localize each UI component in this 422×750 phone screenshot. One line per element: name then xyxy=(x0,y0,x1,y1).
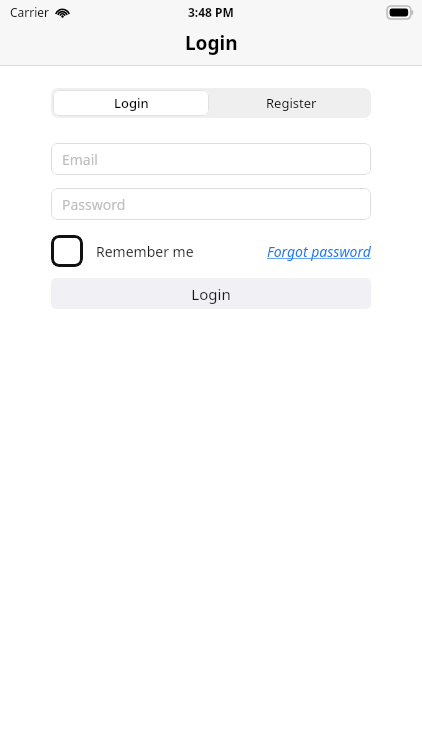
staticText: Register xyxy=(266,94,317,112)
staticText: Carrier xyxy=(10,4,50,20)
staticText: Forgot password xyxy=(267,242,371,261)
button[interactable]: Password xyxy=(51,188,371,220)
button[interactable]: Register xyxy=(211,88,371,118)
staticText: Email xyxy=(62,150,98,169)
button[interactable]: Email xyxy=(51,143,371,175)
button[interactable]: Login xyxy=(51,278,371,309)
staticText: Password xyxy=(62,195,126,214)
staticText: 3:48 PM xyxy=(188,4,234,20)
button[interactable]: Forgot password xyxy=(267,242,371,261)
button[interactable]: Login xyxy=(53,90,209,116)
staticText: Login xyxy=(185,30,238,56)
button[interactable]: Remember me xyxy=(51,235,194,267)
staticText: Remember me xyxy=(96,242,194,261)
staticText: Login xyxy=(191,284,231,304)
staticText: Login xyxy=(114,94,149,112)
